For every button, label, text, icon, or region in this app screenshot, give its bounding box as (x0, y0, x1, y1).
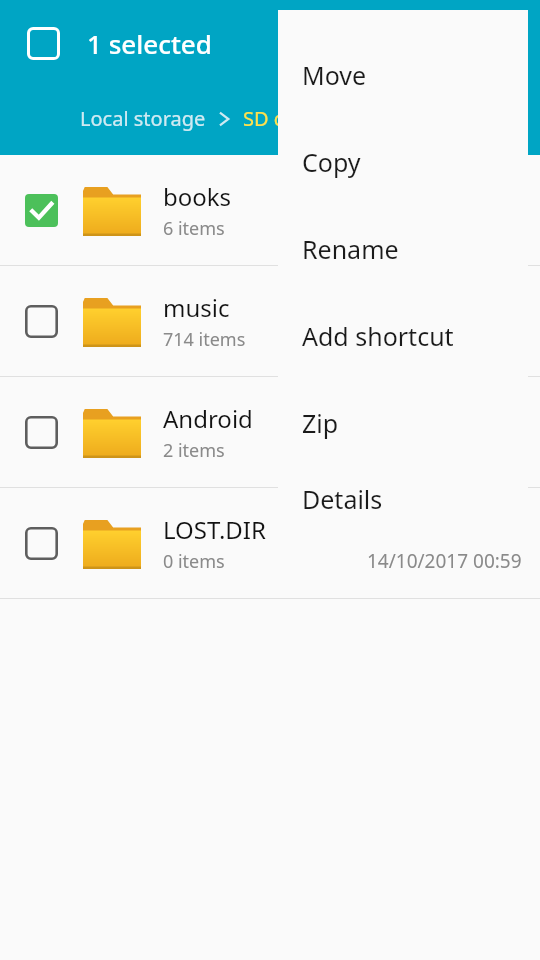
staticText: 6 items (163, 216, 225, 241)
button[interactable]: Copy (278, 118, 528, 205)
staticText: Rename (302, 232, 399, 266)
staticText: Details (302, 482, 383, 516)
staticText: 14/10/2017 00:59 (367, 548, 522, 574)
staticText: Copy (302, 145, 361, 179)
staticText: Add shortcut (302, 319, 454, 353)
button[interactable]: music (0, 266, 540, 377)
staticText: Android (163, 402, 253, 435)
staticText: books (163, 180, 232, 213)
button[interactable]: Zip (278, 379, 528, 466)
staticText: 714 items (163, 327, 246, 352)
button[interactable]: Add shortcut (278, 292, 528, 379)
button[interactable]: Details (278, 466, 528, 531)
staticText: 2 items (163, 438, 225, 463)
button[interactable]: LOST.DIR (0, 488, 540, 599)
button[interactable]: Rename (278, 205, 528, 292)
staticText: Zip (302, 406, 339, 440)
button[interactable]: Select all (26, 26, 60, 60)
staticText: 1 selected (87, 26, 212, 60)
staticText: music (163, 291, 230, 324)
staticText: Move (302, 58, 367, 92)
button[interactable]: books (0, 155, 540, 266)
button[interactable]: SD card (243, 105, 315, 132)
staticText: LOST.DIR (163, 513, 266, 546)
button[interactable]: Move (278, 31, 528, 118)
button[interactable]: Android (0, 377, 540, 488)
staticText: 0 items (163, 549, 225, 574)
button[interactable]: Local storage (80, 105, 206, 132)
